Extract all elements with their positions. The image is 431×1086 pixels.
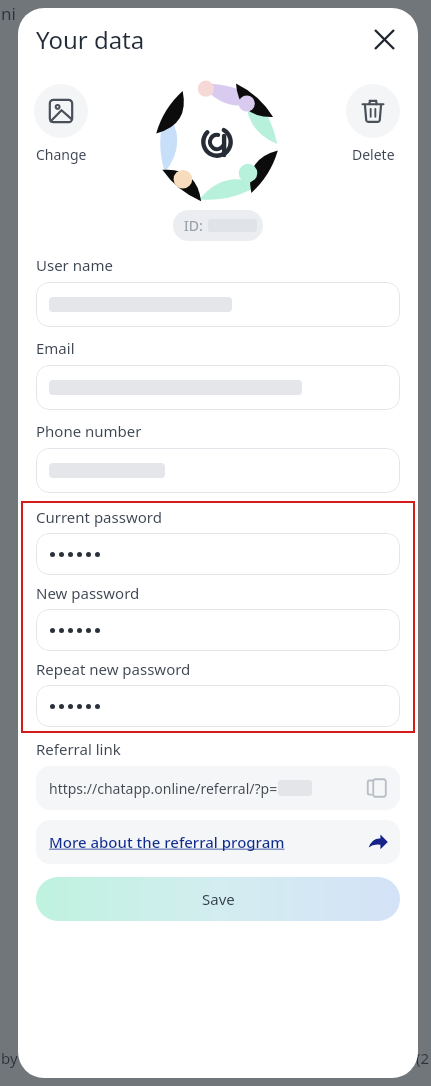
button[interactable]: More about the referral program bbox=[36, 820, 400, 864]
staticText: Your data bbox=[36, 23, 145, 56]
staticText: Email bbox=[36, 338, 75, 358]
staticText: Change bbox=[36, 145, 87, 164]
button[interactable]: Profile avatar bbox=[155, 80, 279, 204]
button[interactable]: Save bbox=[36, 877, 400, 921]
button[interactable]: Close bbox=[364, 19, 404, 59]
staticText: Phone number bbox=[36, 421, 142, 441]
button[interactable]: https://chatapp.online/referral/?p= bbox=[36, 766, 400, 810]
button[interactable]: Copy link bbox=[360, 771, 394, 805]
staticText: More about the referral program bbox=[49, 832, 285, 852]
staticText: Save bbox=[202, 889, 235, 909]
staticText: Repeat new password bbox=[36, 659, 191, 679]
staticText: (2 bbox=[416, 1048, 430, 1068]
staticText: Current password bbox=[36, 507, 162, 527]
staticText: Delete bbox=[352, 145, 395, 164]
button[interactable] bbox=[36, 365, 400, 410]
button[interactable] bbox=[36, 533, 400, 575]
staticText: User name bbox=[36, 255, 113, 275]
staticText: by bbox=[1, 1048, 18, 1068]
button[interactable] bbox=[36, 282, 400, 327]
staticText: Referral link bbox=[36, 739, 121, 759]
staticText: New password bbox=[36, 583, 140, 603]
button[interactable] bbox=[36, 609, 400, 651]
button[interactable]: Delete photo bbox=[342, 80, 404, 168]
staticText: https://chatapp.online/referral/?p= bbox=[49, 779, 278, 798]
staticText: ID: bbox=[184, 216, 203, 235]
button[interactable] bbox=[36, 448, 400, 493]
button[interactable] bbox=[36, 685, 400, 727]
button[interactable]: Change photo bbox=[30, 80, 92, 168]
staticText: ni bbox=[1, 2, 16, 25]
button[interactable]: ID: bbox=[173, 210, 263, 241]
